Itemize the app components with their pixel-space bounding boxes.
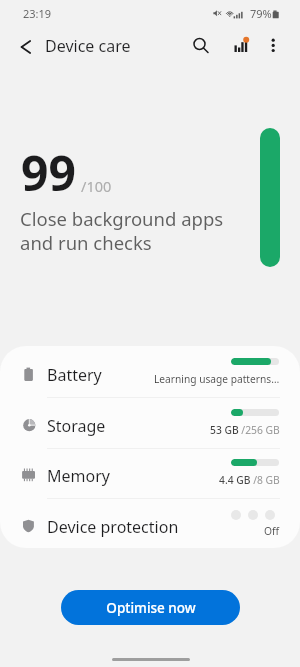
staticText: 99	[21, 140, 76, 205]
button[interactable]: More options	[262, 30, 286, 54]
staticText: Close background apps and run checks	[20, 206, 224, 255]
staticText: 4.4 GB /8 GB	[219, 473, 280, 487]
staticText: Memory	[47, 465, 110, 487]
staticText: Off	[264, 524, 280, 538]
staticText: 79%	[250, 6, 272, 21]
staticText: Device protection	[47, 516, 179, 538]
button[interactable]: Optimise now	[61, 590, 240, 625]
staticText: 23:19	[23, 6, 52, 21]
button[interactable]: Device protection	[0, 498, 300, 548]
staticText: 53 GB /256 GB	[210, 423, 280, 437]
button[interactable]: Storage	[0, 397, 300, 448]
staticText: Learning usage patterns…	[154, 372, 280, 386]
staticText: Optimise now	[106, 599, 196, 617]
button[interactable]: Back	[13, 34, 39, 60]
button[interactable]: Battery	[0, 346, 300, 397]
staticText: Storage	[47, 415, 106, 437]
staticText: Device care	[45, 35, 131, 57]
staticText: /100	[81, 176, 112, 196]
button[interactable]: Usage statistics	[226, 30, 254, 58]
staticText: Battery	[47, 364, 102, 386]
button[interactable]: Memory	[0, 447, 300, 498]
button[interactable]: Search	[186, 30, 214, 58]
